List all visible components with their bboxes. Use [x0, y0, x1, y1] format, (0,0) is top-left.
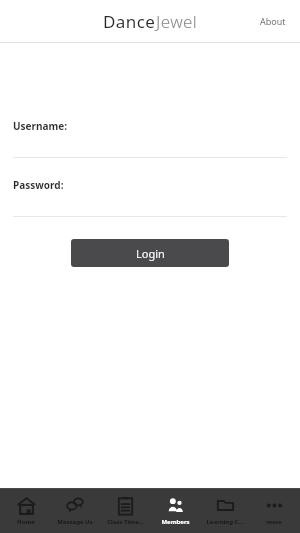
staticText: Class Time...: [107, 518, 144, 526]
button[interactable]: About: [256, 11, 290, 31]
staticText: Login: [136, 246, 165, 261]
button[interactable]: Class Time...: [101, 489, 149, 533]
button[interactable]: Home: [2, 489, 50, 533]
staticText: more: [266, 518, 282, 526]
button[interactable]: more: [250, 489, 298, 533]
staticText: About: [260, 15, 286, 27]
staticText: Learning C...: [206, 518, 244, 526]
staticText: Message Us: [57, 518, 93, 526]
staticText: Dance: [103, 10, 156, 33]
button[interactable]: Learning C...: [201, 489, 249, 533]
staticText: Members: [161, 518, 190, 526]
button[interactable]: Members: [151, 489, 199, 533]
staticText: Password:: [13, 178, 64, 192]
staticText: Jewel: [156, 10, 198, 33]
staticText: Username:: [13, 119, 68, 133]
staticText: Home: [17, 518, 35, 526]
button[interactable]: Login: [71, 239, 229, 267]
button[interactable]: Message Us: [51, 489, 99, 533]
